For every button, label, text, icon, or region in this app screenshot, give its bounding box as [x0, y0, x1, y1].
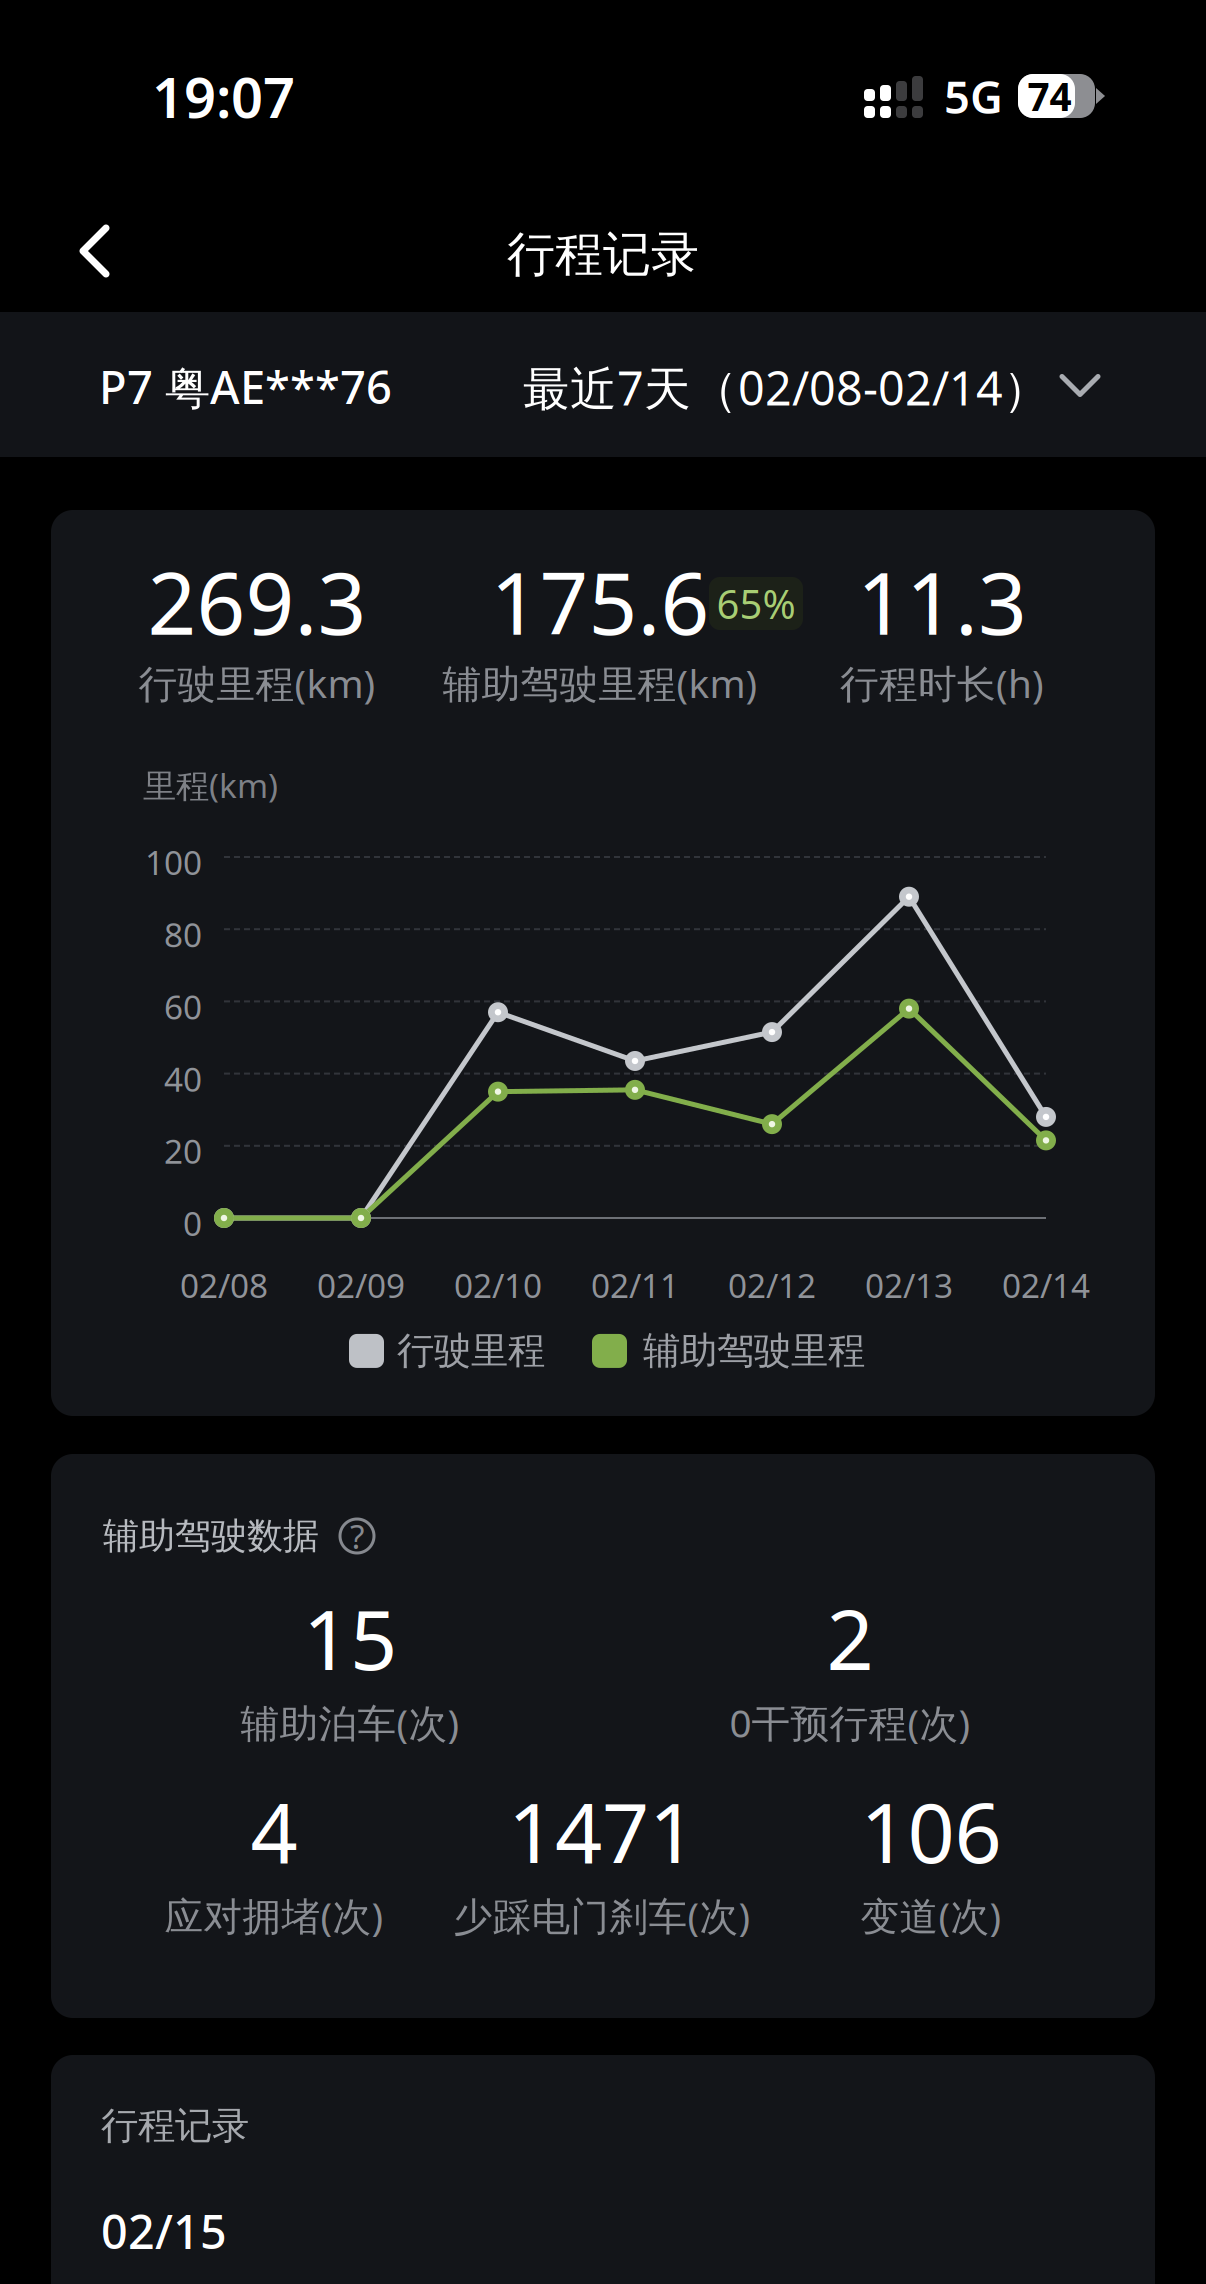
staticText: 辅助驾驶里程(km) [442, 657, 757, 709]
staticText: 0 [183, 1201, 202, 1245]
staticText: 辅助驾驶里程 [643, 1328, 865, 1374]
staticText: 4 [250, 1776, 297, 1886]
staticText: 里程(km) [143, 763, 278, 807]
staticText: 行程时长(h) [840, 657, 1044, 709]
staticText: 0干预行程(次) [729, 1697, 970, 1748]
staticText: 269.3 [147, 545, 366, 658]
button[interactable]: 02/15 [101, 2196, 1105, 2266]
staticText: 02/13 [865, 1263, 953, 1307]
staticText: 02/10 [454, 1263, 542, 1307]
staticText: 1471 [508, 1776, 696, 1886]
staticText: 辅助泊车(次) [240, 1697, 459, 1748]
staticText: 行驶里程 [397, 1328, 545, 1374]
staticText: 02/15 [101, 2200, 227, 2262]
staticText: 应对拥堵(次) [164, 1890, 383, 1941]
staticText: 02/08 [180, 1263, 268, 1307]
staticText: 60 [164, 984, 202, 1029]
staticText: 74 [1027, 70, 1071, 122]
staticText: 02/09 [317, 1263, 405, 1307]
staticText: 变道(次) [860, 1890, 1001, 1941]
staticText: 少踩电门刹车(次) [453, 1890, 750, 1941]
staticText: 5G [944, 66, 1003, 126]
staticText: 辅助驾驶数据 [103, 1514, 319, 1558]
staticText: 行程记录 [507, 225, 699, 284]
button[interactable]: Back [68, 200, 178, 302]
staticText: 65% [716, 577, 795, 630]
staticText: 175.6 [490, 545, 709, 658]
staticText: 2 [826, 1583, 873, 1693]
staticText: 20 [164, 1129, 202, 1173]
staticText: 行驶里程(km) [138, 657, 375, 709]
staticText: 11.3 [857, 545, 1027, 658]
staticText: 02/14 [1002, 1263, 1090, 1307]
button[interactable]: 关于辅助驾驶数据 [330, 1509, 384, 1563]
staticText: 行程记录 [101, 2103, 249, 2149]
staticText: 19:07 [152, 59, 295, 133]
staticText: 40 [164, 1057, 202, 1101]
staticText: 106 [860, 1776, 1001, 1886]
staticText: P7 粤AE***76 [99, 356, 392, 417]
staticText: 15 [303, 1583, 397, 1693]
staticText: 02/12 [728, 1263, 816, 1307]
staticText: 80 [164, 912, 202, 956]
staticText: 02/11 [591, 1263, 679, 1307]
button[interactable]: P7 粤AE***76 [0, 312, 1206, 457]
staticText: 最近7天（02/08-02/14） [523, 356, 1050, 418]
staticText: 100 [145, 840, 202, 884]
staticText: ? [350, 1514, 364, 1558]
